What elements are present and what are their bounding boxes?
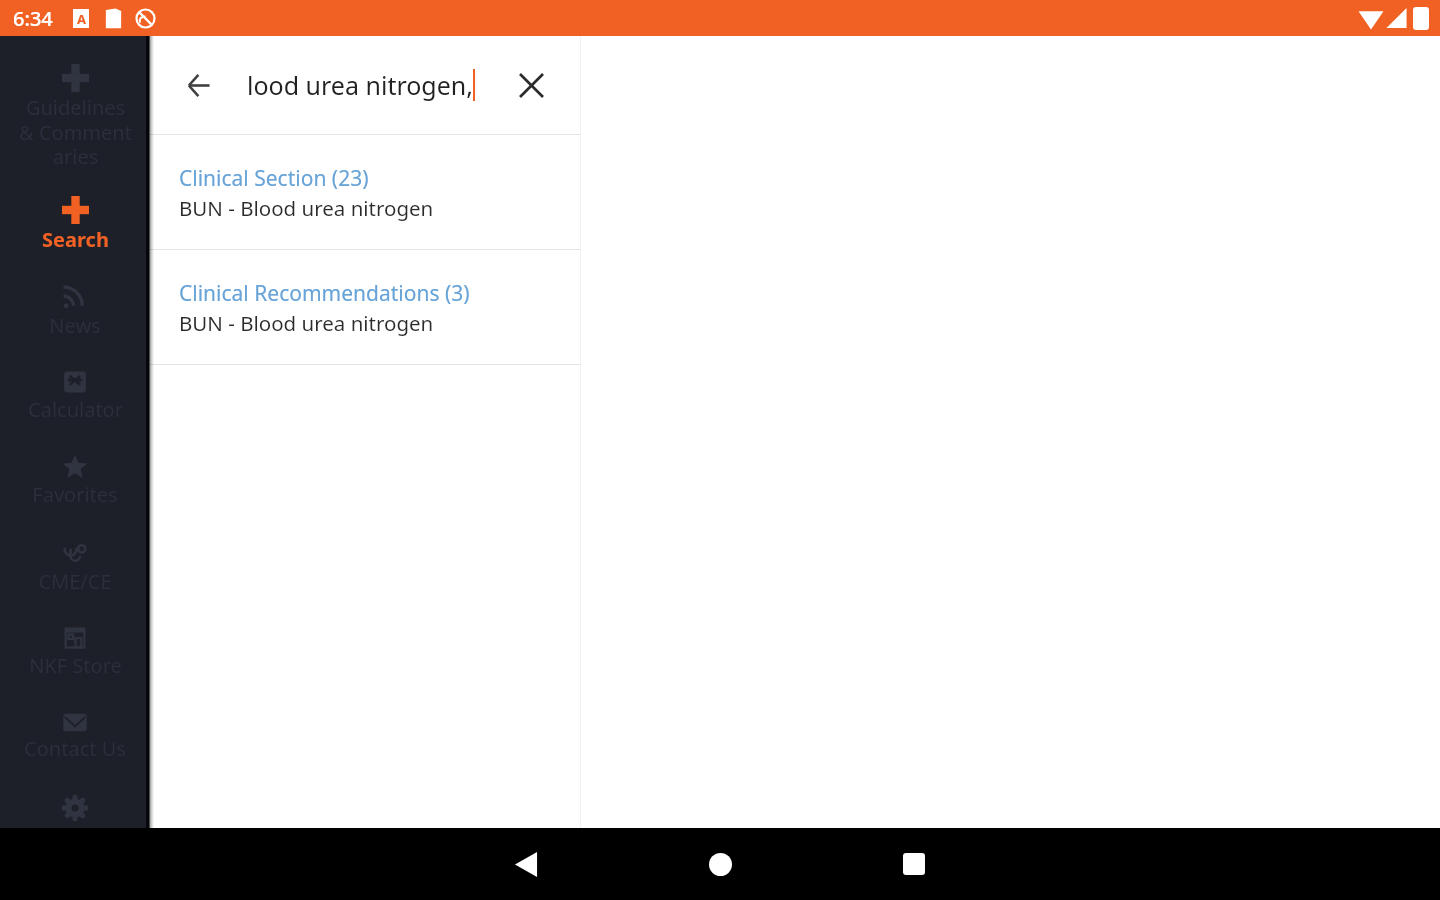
staticText: lood urea nitrogen, [247, 68, 473, 102]
button[interactable]: Home [623, 828, 817, 900]
button[interactable]: Back [150, 36, 247, 134]
button[interactable]: NKF Store [0, 603, 150, 688]
button[interactable]: Guidelines & Comment aries [0, 42, 150, 168]
staticText: NKF Store [29, 652, 122, 679]
staticText: Guidelines & Comment aries [19, 94, 132, 168]
staticText: BUN - Blood urea nitrogen [179, 309, 434, 337]
button[interactable]: lood urea nitrogen, [247, 36, 493, 134]
staticText: Clinical Section (23) [179, 164, 369, 193]
staticText: Favorites [32, 481, 118, 508]
button[interactable]: Favorites [0, 432, 150, 517]
button[interactable]: Clinical Section (23) [150, 135, 580, 250]
staticText: Calculator [28, 396, 123, 423]
button[interactable]: Clinical Recommendations (3) [150, 250, 580, 365]
staticText: Clinical Recommendations (3) [179, 279, 470, 308]
staticText: Contact Us [24, 735, 126, 762]
staticText: A [77, 10, 86, 28]
button[interactable]: News [0, 262, 150, 347]
button[interactable]: Contact Us [0, 690, 150, 775]
button[interactable]: Back [429, 828, 623, 900]
button[interactable]: Recent apps [817, 828, 1011, 900]
button[interactable]: Search [0, 174, 150, 259]
button[interactable]: Calculator [0, 348, 150, 433]
staticText: 6:34 [13, 5, 53, 32]
button[interactable]: CME/CE [0, 518, 150, 603]
button[interactable] [0, 774, 150, 859]
button[interactable]: Clear search [493, 36, 569, 134]
staticText: BUN - Blood urea nitrogen [179, 194, 434, 222]
staticText: CME/CE [38, 568, 112, 595]
staticText: News [49, 312, 101, 339]
staticText: Search [42, 226, 109, 253]
